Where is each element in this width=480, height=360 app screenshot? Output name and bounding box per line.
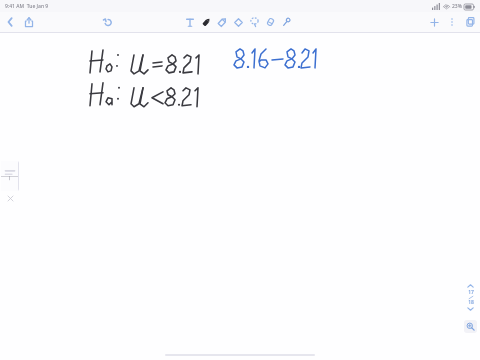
button[interactable]: Page thumbnail [1, 161, 19, 191]
staticText: 9:41 AM Tue Jan 9 [5, 3, 49, 10]
button[interactable]: Marker, selected [199, 13, 213, 31]
button[interactable]: Zoom in [464, 320, 477, 333]
button[interactable]: Close page panel [5, 193, 15, 203]
button[interactable]: Pages [463, 13, 477, 31]
staticText: 18 [468, 299, 474, 306]
button[interactable]: Highlighter [231, 13, 245, 31]
button[interactable]: Pen [215, 13, 229, 31]
button[interactable]: Lasso select [247, 13, 261, 31]
staticText: 23% [452, 3, 462, 10]
button[interactable]: Text tool [183, 13, 197, 31]
button[interactable]: Back [3, 13, 17, 31]
button[interactable]: Share [22, 13, 36, 31]
button[interactable]: More options [445, 13, 459, 31]
button[interactable]: Shapes [279, 13, 293, 31]
button[interactable]: Eraser [263, 13, 277, 31]
button[interactable]: Page 17 of 18 [463, 279, 477, 315]
button[interactable]: Add page [427, 13, 441, 31]
staticText: 17 [468, 289, 474, 296]
button[interactable]: Undo [101, 13, 115, 31]
